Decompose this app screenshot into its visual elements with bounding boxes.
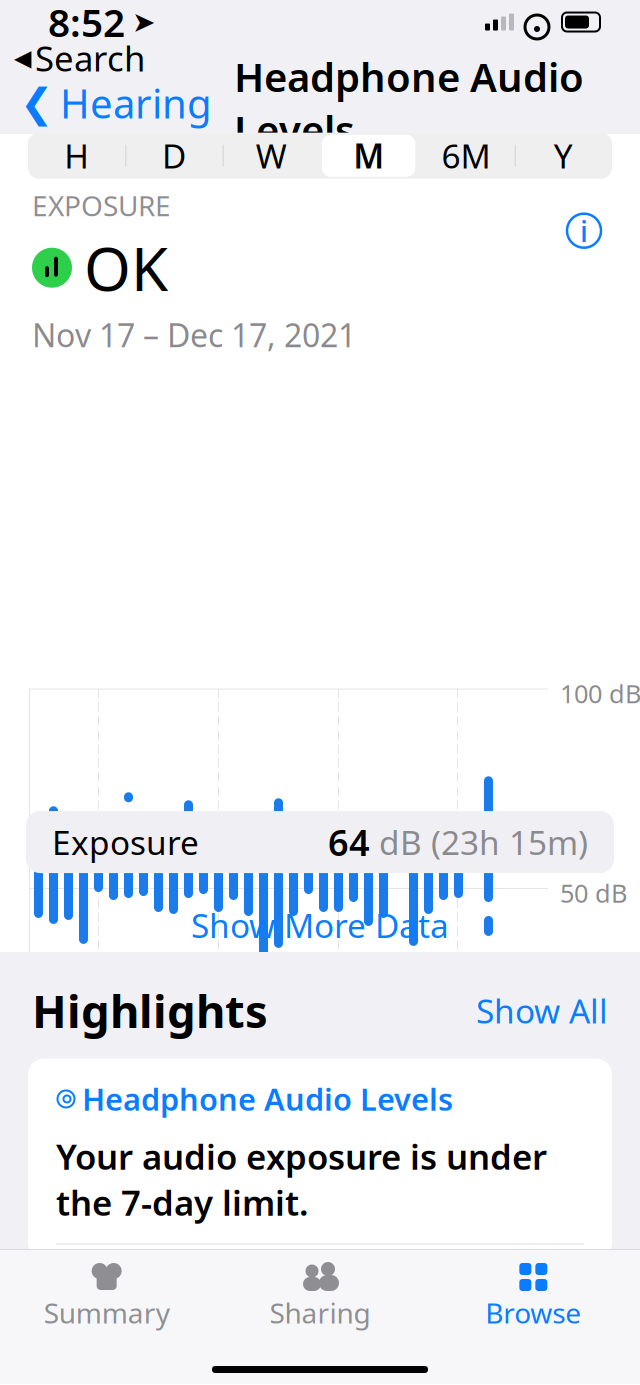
staticText: ❮ xyxy=(20,80,54,126)
staticText: Last 7 Days xyxy=(74,1260,234,1299)
staticText: M xyxy=(353,134,384,178)
staticText: H xyxy=(64,134,89,178)
staticText: Search xyxy=(35,35,145,81)
button[interactable]: W xyxy=(223,133,320,179)
button[interactable]: Show All xyxy=(476,988,608,1033)
staticText: dB (23h 15m) xyxy=(370,820,588,864)
staticText: EXPOSURE xyxy=(32,187,171,224)
button[interactable]: ❮ xyxy=(0,73,220,133)
staticText: 21 xyxy=(103,1095,131,1129)
button[interactable]: ◀ xyxy=(14,35,145,81)
staticText: Y xyxy=(554,134,573,178)
staticText: 28 xyxy=(223,1095,251,1129)
staticText: i xyxy=(580,211,588,250)
staticText: Headphone Audio Levels xyxy=(234,50,584,156)
button[interactable]: Show More Data xyxy=(0,887,640,963)
staticText: W xyxy=(256,134,287,178)
button[interactable]: Sharing xyxy=(213,1258,427,1335)
staticText: 100 dB xyxy=(560,676,640,710)
staticText: 8:52 xyxy=(48,0,125,48)
button[interactable]: H xyxy=(28,133,125,179)
button[interactable]: Browse xyxy=(427,1258,640,1335)
staticText: 5 xyxy=(343,1095,357,1129)
button[interactable]: M xyxy=(320,133,417,179)
staticText: ➤ xyxy=(132,6,155,38)
staticText: Show All xyxy=(476,988,608,1033)
staticText: Exposure xyxy=(52,820,199,864)
staticText: Summary xyxy=(44,1294,170,1331)
staticText: 6M xyxy=(441,134,490,178)
button[interactable]: About headphone audio levels xyxy=(560,207,608,255)
button[interactable]: D xyxy=(125,133,223,179)
staticText: Highlights xyxy=(32,980,268,1041)
button[interactable]: Summary xyxy=(0,1258,213,1335)
staticText: Sharing xyxy=(269,1294,370,1331)
staticText: Hearing xyxy=(60,76,212,129)
staticText: OK xyxy=(84,228,168,308)
staticText: Headphone Audio Levels xyxy=(82,1079,453,1119)
staticText: Your audio exposure is under the 7-day l… xyxy=(56,1133,547,1225)
button[interactable]: 6M xyxy=(417,133,515,179)
staticText: % xyxy=(404,1331,428,1370)
staticText: Nov 17 – Dec 17, 2021 xyxy=(32,313,356,356)
staticText: D xyxy=(162,134,186,178)
staticText: 100 xyxy=(306,1301,402,1376)
staticText: Browse xyxy=(485,1294,581,1331)
staticText: 0 xyxy=(56,1301,88,1376)
staticText: ◀ xyxy=(14,45,31,71)
button[interactable]: Y xyxy=(515,133,612,179)
staticText: 50 dB xyxy=(560,876,627,910)
staticText: Show More Data xyxy=(191,903,449,947)
staticText: 64 xyxy=(328,818,370,866)
staticText: 7-Day Limit xyxy=(324,1260,484,1299)
